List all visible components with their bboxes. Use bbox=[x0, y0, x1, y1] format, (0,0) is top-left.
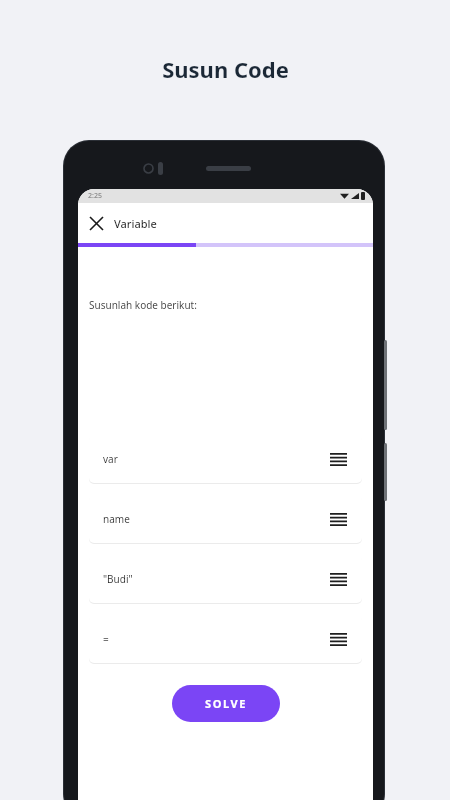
staticText: 2:25 bbox=[88, 191, 102, 201]
button[interactable]: = bbox=[89, 615, 362, 663]
other: Drag handle bbox=[328, 509, 348, 529]
other: Drag handle bbox=[328, 569, 348, 589]
staticText: var bbox=[103, 452, 118, 466]
button[interactable]: name bbox=[89, 495, 362, 543]
other: Drag handle bbox=[328, 449, 348, 469]
staticText: name bbox=[103, 512, 130, 526]
button[interactable]: "Budi" bbox=[89, 555, 362, 603]
button[interactable]: Close bbox=[83, 210, 109, 236]
button[interactable]: SOLVE bbox=[172, 685, 280, 722]
staticText: Susunlah kode berikut: bbox=[89, 298, 197, 312]
staticText: Susun Code bbox=[162, 54, 289, 84]
staticText: SOLVE bbox=[205, 696, 248, 711]
button[interactable]: var bbox=[89, 435, 362, 483]
other: Drag handle bbox=[328, 629, 348, 649]
staticText: = bbox=[103, 632, 109, 646]
staticText: "Budi" bbox=[103, 572, 133, 586]
staticText: Variable bbox=[114, 216, 157, 231]
